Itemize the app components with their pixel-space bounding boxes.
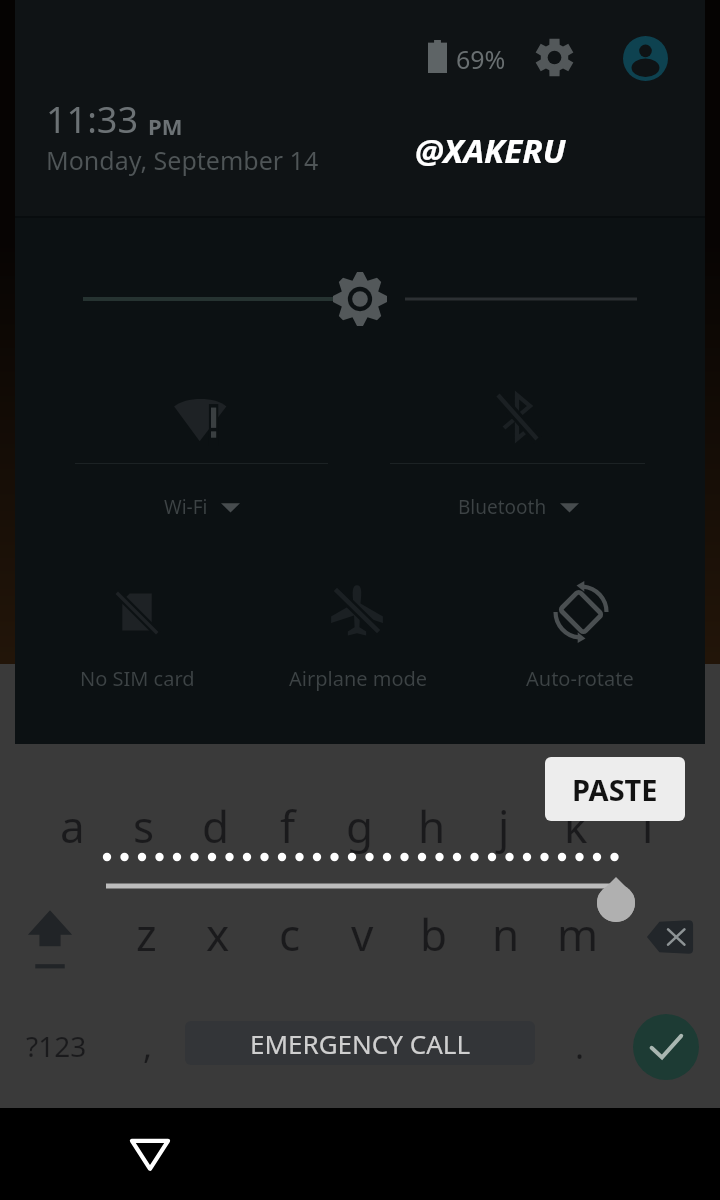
button[interactable]: Airplane mode <box>263 570 443 695</box>
staticText: Bluetooth <box>458 494 547 520</box>
staticText: , <box>143 1023 153 1069</box>
button[interactable]: s <box>108 790 180 862</box>
button[interactable]: a <box>36 790 108 862</box>
staticText: ?123 <box>26 1027 87 1065</box>
button[interactable]: l <box>612 790 684 862</box>
staticText: 11:33 <box>46 95 139 144</box>
button[interactable]: Auto-rotate <box>497 570 677 695</box>
staticText: j <box>498 796 510 856</box>
button[interactable]: User account <box>613 26 677 90</box>
button[interactable]: h <box>396 790 468 862</box>
staticText: d <box>202 796 230 856</box>
button[interactable]: d <box>180 790 252 862</box>
button[interactable]: PASTE <box>545 757 685 821</box>
button[interactable]: b <box>398 898 470 970</box>
staticText: g <box>346 796 374 856</box>
staticText: v <box>351 904 374 964</box>
staticText: m <box>557 904 599 964</box>
button[interactable]: Brightness <box>60 265 660 333</box>
button[interactable]: EMERGENCY CALL <box>185 1021 535 1065</box>
staticText: s <box>133 796 155 856</box>
staticText: h <box>418 796 446 856</box>
button[interactable]: Settings <box>522 25 586 89</box>
staticText: n <box>492 904 520 964</box>
button[interactable]: Hide keyboard <box>108 1110 192 1194</box>
staticText: Monday, September 14 <box>46 143 319 177</box>
staticText: . <box>575 1023 585 1069</box>
button[interactable]: No SIM card <box>47 570 227 695</box>
staticText: b <box>420 904 448 964</box>
button[interactable]: g <box>324 790 396 862</box>
staticText: 69% <box>456 42 506 76</box>
button[interactable]: z <box>110 898 182 970</box>
button[interactable]: Shift <box>10 898 90 980</box>
staticText: Wi-Fi <box>164 494 208 520</box>
button[interactable]: Wi-Fi <box>55 378 350 528</box>
staticText: f <box>280 796 296 856</box>
button[interactable]: x <box>182 898 254 970</box>
staticText: c <box>279 904 301 964</box>
button[interactable]: Bluetooth <box>370 378 665 528</box>
staticText: Auto-rotate <box>526 665 634 692</box>
staticText: a <box>60 796 85 856</box>
staticText: k <box>564 796 588 856</box>
button[interactable]: Done <box>633 1014 699 1080</box>
button[interactable]: j <box>468 790 540 862</box>
button[interactable]: m <box>542 898 614 970</box>
staticText: Airplane mode <box>289 665 428 692</box>
button[interactable]: ?123 <box>6 1010 106 1082</box>
staticText: PASTE <box>572 770 658 809</box>
button[interactable]: c <box>254 898 326 970</box>
button[interactable]: Backspace <box>630 901 710 973</box>
staticText: EMERGENCY CALL <box>250 1026 471 1061</box>
staticText: @XAKERU <box>415 128 566 173</box>
staticText: z <box>136 904 157 964</box>
button[interactable]: f <box>252 790 324 862</box>
staticText: x <box>206 904 230 964</box>
button[interactable]: n <box>470 898 542 970</box>
staticText: l <box>642 796 654 856</box>
staticText: No SIM card <box>80 665 195 692</box>
staticText: PM <box>148 111 183 141</box>
button[interactable]: k <box>540 790 612 862</box>
button[interactable]: v <box>326 898 398 970</box>
